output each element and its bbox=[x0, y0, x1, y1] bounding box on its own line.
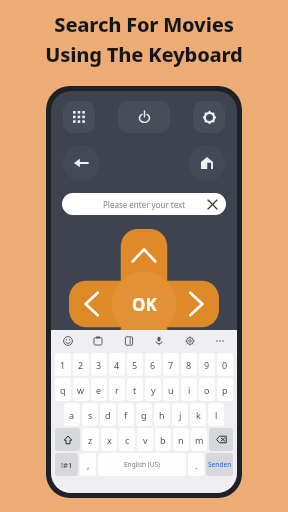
button[interactable]: c bbox=[119, 428, 135, 451]
button[interactable]: Stickers bbox=[119, 331, 139, 351]
button[interactable]: u bbox=[163, 378, 179, 401]
button[interactable]: Voice input bbox=[149, 331, 169, 351]
staticText: r bbox=[115, 384, 119, 396]
staticText: q bbox=[60, 384, 66, 396]
button[interactable]: 8 bbox=[181, 353, 197, 376]
staticText: s bbox=[88, 409, 93, 421]
staticText: j bbox=[179, 409, 182, 421]
button[interactable]: 0 bbox=[217, 353, 233, 376]
staticText: e bbox=[96, 384, 102, 396]
button[interactable]: Keyboard settings bbox=[180, 331, 200, 351]
button[interactable]: z bbox=[82, 428, 99, 451]
button[interactable]: s bbox=[82, 403, 98, 426]
staticText: 2 bbox=[78, 359, 84, 371]
button[interactable]: 7 bbox=[163, 353, 179, 376]
button[interactable]: j bbox=[172, 403, 188, 426]
button[interactable]: q bbox=[55, 378, 71, 401]
button[interactable]: g bbox=[136, 403, 152, 426]
button[interactable]: Home bbox=[189, 145, 225, 181]
button[interactable]: 4 bbox=[109, 353, 125, 376]
staticText: , bbox=[87, 459, 90, 471]
staticText: i bbox=[188, 384, 191, 396]
staticText: 9 bbox=[204, 359, 210, 371]
button[interactable]: . bbox=[188, 453, 204, 476]
staticText: 1 bbox=[60, 359, 66, 371]
staticText: w bbox=[77, 384, 85, 396]
button[interactable]: x bbox=[101, 428, 117, 451]
staticText: Search For Movies bbox=[54, 11, 234, 38]
button[interactable]: Apps bbox=[63, 101, 95, 133]
staticText: k bbox=[196, 409, 201, 421]
button[interactable]: Settings bbox=[193, 101, 225, 133]
staticText: y bbox=[151, 384, 156, 396]
button[interactable]: b bbox=[155, 428, 171, 451]
staticText: 8 bbox=[186, 359, 192, 371]
button[interactable]: Back bbox=[63, 145, 99, 181]
button[interactable]: n bbox=[173, 428, 189, 451]
button[interactable]: y bbox=[145, 378, 161, 401]
staticText: . bbox=[195, 459, 198, 471]
staticText: l bbox=[215, 409, 218, 421]
staticText: g bbox=[141, 409, 147, 421]
button[interactable]: More bbox=[210, 331, 230, 351]
staticText: f bbox=[124, 409, 128, 421]
button[interactable]: !#1 bbox=[55, 453, 78, 476]
staticText: p bbox=[222, 384, 228, 396]
button[interactable]: d bbox=[100, 403, 116, 426]
button[interactable]: Clipboard bbox=[88, 331, 108, 351]
button[interactable]: Senden bbox=[206, 453, 233, 476]
staticText: Please enter your text bbox=[103, 199, 186, 210]
button[interactable]: Shift bbox=[55, 428, 80, 451]
button[interactable]: p bbox=[217, 378, 233, 401]
staticText: 7 bbox=[168, 359, 174, 371]
button[interactable]: h bbox=[154, 403, 170, 426]
staticText: 4 bbox=[114, 359, 120, 371]
button[interactable]: 3 bbox=[91, 353, 107, 376]
button[interactable]: i bbox=[181, 378, 197, 401]
staticText: 3 bbox=[96, 359, 102, 371]
button[interactable]: a bbox=[64, 403, 80, 426]
staticText: 5 bbox=[132, 359, 138, 371]
staticText: 6 bbox=[150, 359, 156, 371]
button[interactable]: English (US) bbox=[98, 453, 186, 476]
button[interactable]: k bbox=[190, 403, 206, 426]
button[interactable]: e bbox=[91, 378, 107, 401]
staticText: 0 bbox=[222, 359, 228, 371]
button[interactable]: w bbox=[73, 378, 89, 401]
button[interactable]: 6 bbox=[145, 353, 161, 376]
button[interactable]: v bbox=[137, 428, 153, 451]
button[interactable]: l bbox=[208, 403, 224, 426]
staticText: b bbox=[160, 434, 166, 446]
staticText: o bbox=[204, 384, 210, 396]
staticText: u bbox=[168, 384, 174, 396]
staticText: z bbox=[88, 434, 93, 446]
button[interactable]: Emoji bbox=[58, 331, 78, 351]
button[interactable]: 5 bbox=[127, 353, 143, 376]
staticText: m bbox=[195, 434, 204, 446]
staticText: a bbox=[69, 409, 75, 421]
staticText: x bbox=[107, 434, 112, 446]
staticText: OK bbox=[132, 293, 157, 316]
button[interactable]: 9 bbox=[199, 353, 215, 376]
button[interactable]: 2 bbox=[73, 353, 89, 376]
button[interactable]: t bbox=[127, 378, 143, 401]
button[interactable]: m bbox=[191, 428, 207, 451]
button[interactable]: Please enter your text bbox=[62, 193, 226, 215]
button[interactable]: f bbox=[118, 403, 134, 426]
button[interactable]: 1 bbox=[55, 353, 71, 376]
button[interactable]: Backspace bbox=[209, 428, 233, 451]
staticText: Senden bbox=[208, 460, 232, 469]
staticText: !#1 bbox=[61, 460, 73, 470]
staticText: d bbox=[105, 409, 111, 421]
staticText: h bbox=[159, 409, 165, 421]
button[interactable]: , bbox=[80, 453, 96, 476]
button[interactable]: r bbox=[109, 378, 125, 401]
staticText: v bbox=[143, 434, 148, 446]
button[interactable]: Power bbox=[118, 101, 170, 133]
staticText: c bbox=[125, 434, 130, 446]
staticText: t bbox=[133, 384, 137, 396]
staticText: n bbox=[178, 434, 184, 446]
staticText: English (US) bbox=[124, 460, 161, 469]
button[interactable]: o bbox=[199, 378, 215, 401]
staticText: Using The Keyboard bbox=[45, 41, 243, 68]
